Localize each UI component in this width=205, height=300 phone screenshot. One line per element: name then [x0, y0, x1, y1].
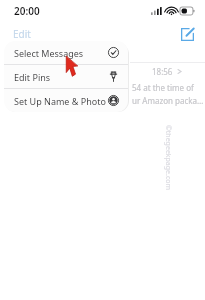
staticText: ur Amazon packa… — [132, 95, 204, 106]
button[interactable]: Edit — [11, 25, 33, 43]
staticText: Edit — [13, 27, 31, 41]
button[interactable]: Set Up Name & Photo — [4, 89, 128, 112]
staticText: ©thegeekpage.com — [163, 125, 173, 191]
staticText: Edit Pins — [14, 71, 51, 83]
button[interactable]: Compose new message — [178, 25, 196, 43]
staticText: 18:56 — [152, 66, 173, 77]
staticText: 20:00 — [14, 4, 40, 18]
staticText: 54 at the time of — [132, 82, 194, 93]
button[interactable]: Select Messages — [4, 41, 128, 64]
button[interactable]: Edit Pins — [4, 65, 128, 88]
staticText: Set Up Name & Photo — [14, 95, 106, 107]
staticText: Select Messages — [14, 47, 84, 59]
